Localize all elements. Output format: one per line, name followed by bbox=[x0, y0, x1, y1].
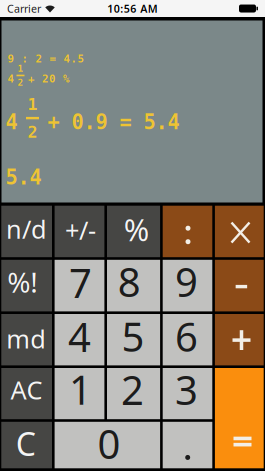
button[interactable]: Divide bbox=[163, 206, 212, 257]
button[interactable]: n/d bbox=[1, 206, 52, 257]
staticText: 5.4 bbox=[5, 165, 41, 189]
staticText: 5 bbox=[122, 310, 145, 363]
staticText: +/- bbox=[65, 213, 96, 247]
button[interactable]: 5 bbox=[107, 314, 160, 365]
staticText: 1 bbox=[27, 94, 37, 114]
staticText: C bbox=[16, 422, 36, 465]
button[interactable]: +/- bbox=[55, 206, 104, 257]
button[interactable]: 1 bbox=[55, 368, 104, 419]
staticText: + 20 % bbox=[28, 72, 70, 85]
button[interactable]: 7 bbox=[55, 260, 104, 311]
button[interactable]: %! bbox=[1, 260, 52, 311]
staticText: 10:56 AM bbox=[107, 1, 158, 16]
staticText: 4 bbox=[5, 110, 17, 134]
button[interactable]: Plus bbox=[215, 314, 264, 365]
button[interactable]: 0 bbox=[55, 422, 160, 468]
staticText: 0 bbox=[97, 417, 120, 470]
button[interactable]: 9 bbox=[163, 260, 212, 311]
staticText: 3 bbox=[175, 363, 198, 416]
button[interactable]: Equals bbox=[215, 368, 264, 468]
staticText: 6 bbox=[175, 310, 198, 363]
button[interactable]: % bbox=[107, 206, 160, 257]
staticText: + 0.9 = 5.4 bbox=[47, 110, 179, 134]
staticText: 2 bbox=[121, 363, 144, 416]
staticText: md bbox=[6, 322, 46, 355]
button[interactable]: 6 bbox=[163, 314, 212, 365]
staticText: n/d bbox=[6, 212, 47, 246]
staticText: 7 bbox=[69, 256, 92, 309]
button[interactable]: C bbox=[1, 422, 52, 468]
staticText: 9 bbox=[175, 255, 198, 308]
button[interactable]: 8 bbox=[107, 260, 160, 311]
staticText: 9 : 2 = 4.5 bbox=[7, 52, 84, 65]
button[interactable]: 3 bbox=[163, 368, 212, 419]
staticText: 2 bbox=[17, 77, 23, 88]
button[interactable]: AC bbox=[1, 368, 52, 419]
staticText: %! bbox=[7, 263, 38, 301]
staticText: 1 bbox=[69, 363, 92, 416]
staticText: AC bbox=[10, 373, 42, 406]
staticText: 1 bbox=[17, 63, 23, 74]
button[interactable]: 2 bbox=[107, 368, 160, 419]
staticText: 2 bbox=[27, 122, 37, 142]
staticText: 4 bbox=[68, 310, 91, 363]
staticText: Carrier bbox=[7, 1, 41, 16]
staticText: 8 bbox=[118, 255, 141, 308]
staticText: % bbox=[124, 209, 149, 250]
button[interactable]: Multiply bbox=[215, 206, 264, 257]
button[interactable]: Decimal point bbox=[163, 422, 212, 468]
button[interactable]: md bbox=[1, 314, 52, 365]
button[interactable]: 4 bbox=[55, 314, 104, 365]
staticText: 4 bbox=[7, 72, 14, 85]
button[interactable]: Minus bbox=[215, 260, 264, 311]
